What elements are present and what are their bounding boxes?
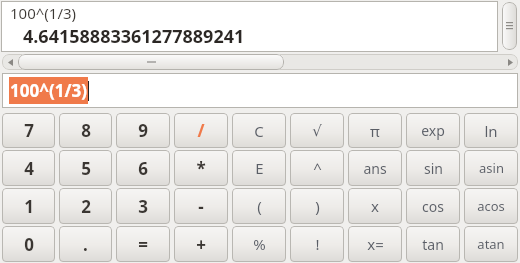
staticText: /: [197, 119, 205, 142]
staticText: 5: [81, 157, 91, 180]
button[interactable]: 4: [2, 150, 55, 186]
staticText: E: [255, 158, 264, 178]
staticText: %: [253, 234, 266, 254]
button[interactable]: Scroll horizontally: [2, 54, 518, 70]
staticText: 9: [138, 119, 148, 142]
button[interactable]: exp: [406, 113, 460, 148]
button[interactable]: .: [59, 226, 112, 262]
staticText: sin: [424, 159, 443, 178]
staticText: +: [196, 233, 206, 256]
staticText: 4.64158883361277889241: [23, 24, 245, 49]
button[interactable]: *: [174, 150, 228, 186]
staticText: 100^(1/3): [10, 79, 87, 102]
button[interactable]: 5: [59, 150, 112, 186]
staticText: exp: [421, 121, 445, 140]
staticText: 100^(1/3): [10, 3, 77, 23]
button[interactable]: ^: [290, 150, 344, 186]
button[interactable]: π: [348, 113, 402, 148]
staticText: !: [315, 234, 320, 254]
button[interactable]: acos: [464, 188, 518, 224]
button[interactable]: E: [232, 150, 286, 186]
staticText: x: [371, 196, 379, 216]
button[interactable]: =: [116, 226, 170, 262]
staticText: atan: [477, 235, 505, 253]
button[interactable]: 9: [116, 113, 170, 148]
staticText: 3: [138, 195, 148, 218]
button[interactable]: +: [174, 226, 228, 262]
button[interactable]: 3: [116, 188, 170, 224]
staticText: 8: [81, 119, 91, 142]
staticText: 0: [24, 233, 34, 256]
button[interactable]: Scroll vertically: [498, 0, 520, 52]
button[interactable]: C: [232, 113, 286, 148]
staticText: tan: [422, 235, 444, 254]
button[interactable]: sin: [406, 150, 460, 186]
button[interactable]: %: [232, 226, 286, 262]
staticText: *: [196, 157, 206, 180]
button[interactable]: tan: [406, 226, 460, 262]
button[interactable]: (: [232, 188, 286, 224]
button[interactable]: 1: [2, 188, 55, 224]
staticText: ln: [484, 121, 498, 141]
staticText: 1: [24, 195, 34, 218]
staticText: ^: [313, 158, 322, 178]
staticText: √: [312, 122, 322, 139]
button[interactable]: !: [290, 226, 344, 262]
staticText: ans: [363, 159, 387, 178]
staticText: 6: [138, 157, 148, 180]
staticText: -: [198, 195, 204, 218]
staticText: 7: [24, 119, 34, 142]
staticText: .: [83, 233, 88, 256]
button[interactable]: asin: [464, 150, 518, 186]
button[interactable]: 100^(1/3): [2, 73, 518, 108]
staticText: =: [138, 233, 148, 256]
button[interactable]: /: [174, 113, 228, 148]
button[interactable]: √: [290, 113, 344, 148]
button[interactable]: 0: [2, 226, 55, 262]
staticText: x=: [367, 234, 384, 254]
staticText: 2: [81, 195, 91, 218]
button[interactable]: ): [290, 188, 344, 224]
button[interactable]: x=: [348, 226, 402, 262]
button[interactable]: ln: [464, 113, 518, 148]
staticText: 4: [24, 157, 34, 180]
button[interactable]: x: [348, 188, 402, 224]
button[interactable]: cos: [406, 188, 460, 224]
button[interactable]: -: [174, 188, 228, 224]
staticText: asin: [479, 159, 504, 177]
staticText: π: [370, 121, 380, 141]
staticText: cos: [422, 197, 444, 216]
button[interactable]: 2: [59, 188, 112, 224]
staticText: acos: [477, 197, 505, 215]
button[interactable]: 6: [116, 150, 170, 186]
button[interactable]: ans: [348, 150, 402, 186]
button[interactable]: 8: [59, 113, 112, 148]
staticText: C: [254, 121, 264, 141]
staticText: ): [315, 196, 320, 216]
staticText: (: [257, 196, 262, 216]
button[interactable]: 7: [2, 113, 55, 148]
button[interactable]: atan: [464, 226, 518, 262]
